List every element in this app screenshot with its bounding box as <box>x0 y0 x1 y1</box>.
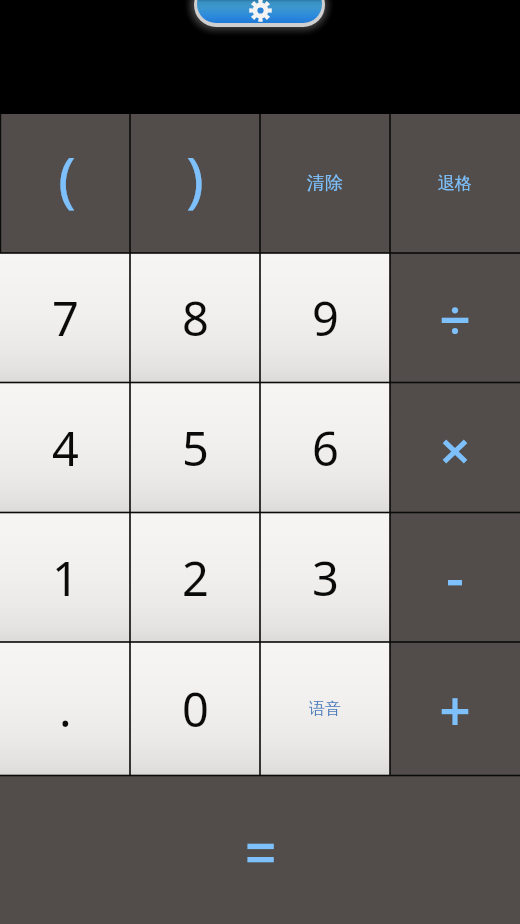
button[interactable]: 0 <box>130 642 260 776</box>
staticText: 2 <box>182 546 209 610</box>
staticText: 语音 <box>309 699 341 719</box>
button[interactable]: Multiply <box>390 383 520 513</box>
button[interactable]: 3 <box>260 513 390 643</box>
staticText: 8 <box>182 286 209 350</box>
button[interactable]: 7 <box>0 253 130 383</box>
staticText: 3 <box>312 546 339 610</box>
button[interactable]: 退格 <box>390 114 520 253</box>
button[interactable]: 2 <box>130 513 260 643</box>
staticText: . <box>59 677 72 741</box>
button[interactable]: Subtract <box>390 513 520 643</box>
button[interactable]: 1 <box>0 513 130 643</box>
button[interactable]: 语音 <box>260 642 390 776</box>
staticText: 7 <box>52 286 79 350</box>
staticText: ( <box>58 137 76 219</box>
staticText: 0 <box>182 677 209 741</box>
button[interactable]: ( <box>0 114 130 253</box>
button[interactable]: 清除 <box>260 114 390 253</box>
button[interactable]: Add <box>390 642 520 776</box>
button[interactable]: 4 <box>0 383 130 513</box>
button[interactable]: 8 <box>130 253 260 383</box>
button[interactable]: ) <box>130 114 260 253</box>
staticText: 9 <box>312 286 339 350</box>
staticText: 6 <box>312 416 339 480</box>
button[interactable]: Equals <box>0 776 520 924</box>
staticText: 退格 <box>438 173 472 194</box>
button[interactable]: 5 <box>130 383 260 513</box>
staticText: 清除 <box>307 172 343 195</box>
staticText: 1 <box>52 546 79 610</box>
staticText: 5 <box>182 416 209 480</box>
button[interactable]: Settings <box>194 0 325 27</box>
staticText: 4 <box>52 416 79 480</box>
button[interactable]: . <box>0 642 130 776</box>
button[interactable]: Divide <box>390 253 520 383</box>
button[interactable]: 9 <box>260 253 390 383</box>
staticText: ) <box>186 137 204 219</box>
button[interactable]: 6 <box>260 383 390 513</box>
